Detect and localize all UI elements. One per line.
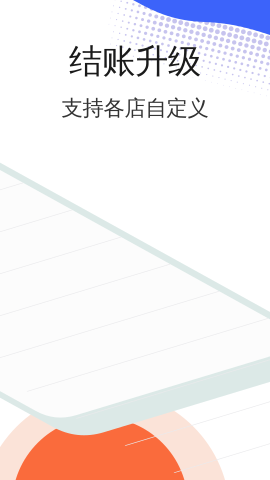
staticText: 结账升级 [69,41,201,82]
staticText: 支持各店自定义 [61,95,208,121]
